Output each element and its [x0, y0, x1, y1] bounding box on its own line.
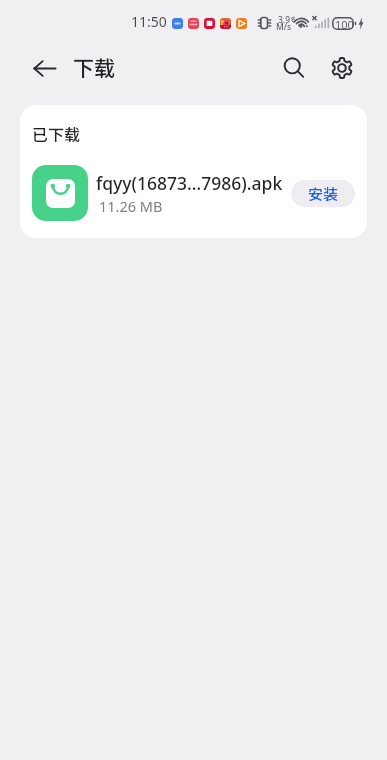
staticText: 11:50 — [131, 12, 167, 31]
staticText: M/s — [276, 21, 292, 33]
staticText: 11.26 MB — [99, 196, 163, 216]
staticText: fqyy(16873…7986).apk — [96, 171, 283, 195]
staticText: 安装 — [308, 183, 339, 205]
button[interactable]: Settings — [321, 47, 363, 89]
staticText: 100 — [335, 17, 354, 30]
button[interactable]: Back — [23, 47, 65, 89]
staticText: 3.9 — [278, 14, 294, 26]
staticText: 已下载 — [32, 122, 81, 145]
button[interactable]: Search — [273, 47, 315, 89]
staticText: 下载 — [73, 52, 115, 82]
button[interactable]: 安装 — [291, 180, 355, 207]
